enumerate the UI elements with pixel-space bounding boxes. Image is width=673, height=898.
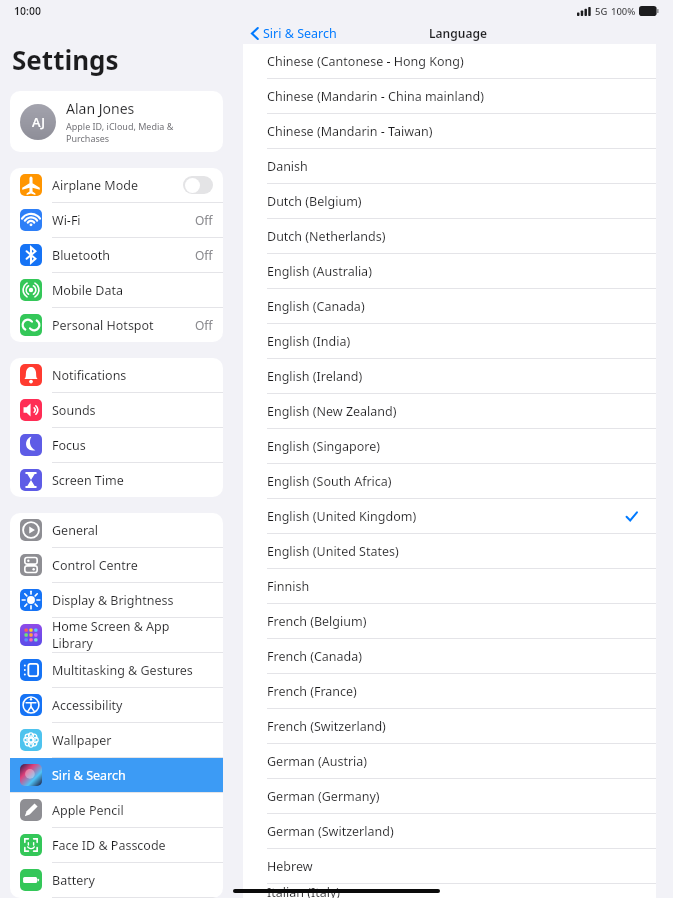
staticText: German (Germany) [267, 788, 638, 805]
button[interactable]: Dutch (Belgium) [243, 184, 656, 218]
button[interactable]: General [10, 513, 223, 547]
button[interactable]: Display & Brightness [10, 583, 223, 617]
button[interactable]: French (Canada) [243, 639, 656, 673]
button[interactable]: Finnish [243, 569, 656, 603]
button[interactable]: Battery [10, 863, 223, 897]
staticText: Airplane Mode [52, 177, 183, 194]
staticText: Chinese (Cantonese - Hong Kong) [267, 53, 638, 70]
staticText: French (Canada) [267, 648, 638, 665]
staticText: English (United States) [267, 543, 638, 560]
staticText: English (Canada) [267, 298, 638, 315]
staticText: Siri & Search [52, 767, 213, 784]
staticText: Display & Brightness [52, 592, 213, 609]
staticText: German (Switzerland) [267, 823, 638, 840]
staticText: Chinese (Mandarin - Taiwan) [267, 123, 638, 140]
button[interactable]: English (Australia) [243, 254, 656, 288]
button[interactable]: Mobile Data [10, 273, 223, 307]
button[interactable]: Dutch (Netherlands) [243, 219, 656, 253]
button[interactable]: Bluetooth [10, 238, 223, 272]
staticText: 5G [595, 5, 608, 18]
button[interactable]: Danish [243, 149, 656, 183]
button[interactable]: English (United Kingdom) [243, 499, 656, 533]
staticText: Off [195, 212, 213, 228]
staticText: Apple Pencil [52, 802, 213, 819]
button[interactable]: Home Screen & App Library [10, 618, 223, 652]
button[interactable]: Wallpaper [10, 723, 223, 757]
staticText: Screen Time [52, 472, 213, 489]
staticText: Hebrew [267, 858, 638, 875]
button[interactable]: Airplane Mode [10, 168, 223, 202]
staticText: Home Screen & App Library [52, 618, 213, 652]
button[interactable]: Wi-Fi [10, 203, 223, 237]
button[interactable]: Multitasking & Gestures [10, 653, 223, 687]
staticText: Apple ID, iCloud, Media & Purchases [66, 120, 213, 144]
button[interactable]: Personal Hotspot [10, 308, 223, 342]
button[interactable]: Airplane Mode toggle [183, 176, 213, 194]
button[interactable]: German (Germany) [243, 779, 656, 813]
button[interactable]: Apple Pencil [10, 793, 223, 827]
staticText: Finnish [267, 578, 638, 595]
button[interactable]: Italian (Italy) [243, 884, 656, 898]
button[interactable]: Hebrew [243, 849, 656, 883]
button[interactable]: Face ID & Passcode [10, 828, 223, 862]
button[interactable]: Accessibility [10, 688, 223, 722]
button[interactable]: Focus [10, 428, 223, 462]
button[interactable]: Siri & Search [10, 758, 223, 792]
staticText: Off [195, 317, 213, 333]
staticText: 100% [611, 5, 636, 18]
button[interactable]: Siri & Search [243, 25, 343, 42]
button[interactable]: French (France) [243, 674, 656, 708]
staticText: Language [429, 25, 487, 41]
staticText: Multitasking & Gestures [52, 662, 213, 679]
staticText: AJ [32, 113, 45, 131]
button[interactable]: French (Switzerland) [243, 709, 656, 743]
staticText: English (United Kingdom) [267, 508, 625, 525]
staticText: Sounds [52, 402, 213, 419]
staticText: Danish [267, 158, 638, 175]
button[interactable]: English (Canada) [243, 289, 656, 323]
staticText: Wi-Fi [52, 212, 195, 229]
staticText: Alan Jones [66, 99, 135, 118]
staticText: Wallpaper [52, 732, 213, 749]
staticText: English (Singapore) [267, 438, 638, 455]
staticText: Notifications [52, 367, 213, 384]
staticText: General [52, 522, 213, 539]
button[interactable]: English (United States) [243, 534, 656, 568]
staticText: English (Australia) [267, 263, 638, 280]
staticText: English (India) [267, 333, 638, 350]
button[interactable]: Chinese (Mandarin - China mainland) [243, 79, 656, 113]
button[interactable]: Sounds [10, 393, 223, 427]
staticText: Settings [12, 42, 119, 77]
staticText: Chinese (Mandarin - China mainland) [267, 88, 638, 105]
staticText: 10:00 [14, 4, 41, 18]
button[interactable]: German (Switzerland) [243, 814, 656, 848]
staticText: Off [195, 247, 213, 263]
staticText: French (Belgium) [267, 613, 638, 630]
button[interactable]: German (Austria) [243, 744, 656, 778]
staticText: Battery [52, 872, 213, 889]
staticText: German (Austria) [267, 753, 638, 770]
staticText: Control Centre [52, 557, 213, 574]
staticText: Dutch (Belgium) [267, 193, 638, 210]
staticText: Personal Hotspot [52, 317, 195, 334]
button[interactable]: AJ [10, 91, 223, 152]
button[interactable]: English (New Zealand) [243, 394, 656, 428]
staticText: Bluetooth [52, 247, 195, 264]
button[interactable]: French (Belgium) [243, 604, 656, 638]
button[interactable]: Control Centre [10, 548, 223, 582]
staticText: Italian (Italy) [267, 884, 638, 898]
button[interactable]: Screen Time [10, 463, 223, 497]
button[interactable]: English (South Africa) [243, 464, 656, 498]
staticText: Siri & Search [263, 25, 337, 42]
button[interactable]: Chinese (Cantonese - Hong Kong) [243, 44, 656, 78]
staticText: French (Switzerland) [267, 718, 638, 735]
button[interactable]: Chinese (Mandarin - Taiwan) [243, 114, 656, 148]
button[interactable]: English (India) [243, 324, 656, 358]
staticText: English (South Africa) [267, 473, 638, 490]
button[interactable]: English (Singapore) [243, 429, 656, 463]
staticText: Mobile Data [52, 282, 213, 299]
button[interactable]: Notifications [10, 358, 223, 392]
button[interactable]: English (Ireland) [243, 359, 656, 393]
staticText: Face ID & Passcode [52, 837, 213, 854]
staticText: English (Ireland) [267, 368, 638, 385]
